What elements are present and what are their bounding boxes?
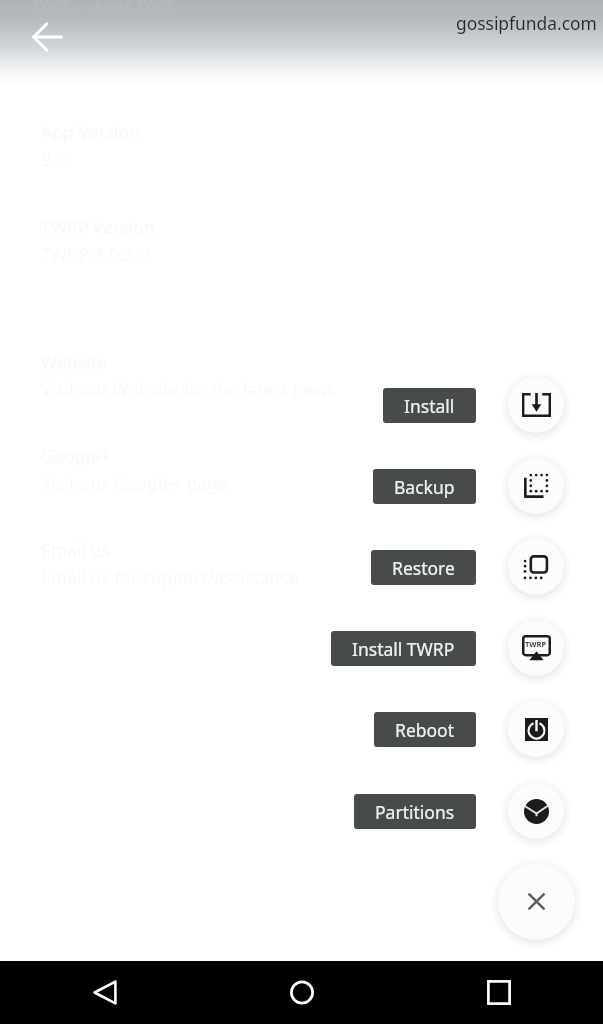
button[interactable]: Recent apps	[468, 961, 530, 1024]
button[interactable]: Install	[508, 377, 564, 433]
button[interactable]: Install TWRP	[331, 631, 476, 666]
button[interactable]: Backup	[373, 469, 476, 504]
button[interactable]: Install	[383, 388, 476, 423]
button[interactable]: Partitions	[354, 794, 476, 829]
staticText: Backup	[394, 475, 455, 499]
button[interactable]: Install TWRP	[508, 620, 564, 676]
button[interactable]: Home	[271, 961, 333, 1024]
button[interactable]: Reboot	[374, 712, 476, 747]
staticText: Reboot	[395, 718, 455, 742]
button[interactable]: Navigate up	[27, 17, 67, 57]
staticText: TWRP	[525, 639, 547, 649]
button[interactable]: Close menu	[498, 863, 575, 940]
staticText: Install TWRP	[352, 637, 455, 661]
button[interactable]: Back	[74, 961, 136, 1024]
staticText: Install	[404, 394, 455, 418]
staticText: Restore	[392, 556, 455, 580]
button[interactable]: Partitions	[508, 783, 564, 839]
button[interactable]: Backup	[508, 458, 564, 514]
button[interactable]: Reboot	[508, 701, 564, 757]
button[interactable]: Restore	[371, 550, 476, 585]
button[interactable]: Restore	[508, 539, 564, 595]
staticText: Partitions	[375, 800, 455, 824]
staticText: gossipfunda.com	[456, 11, 597, 35]
